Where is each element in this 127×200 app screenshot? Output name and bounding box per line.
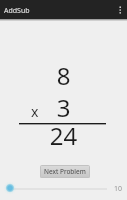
staticText: 10 — [114, 184, 123, 194]
staticText: Next Problem — [44, 167, 86, 176]
staticText: x — [31, 102, 39, 121]
staticText: AddSub — [4, 6, 30, 16]
button[interactable]: More options — [113, 1, 127, 19]
staticText: 24 — [0, 119, 127, 152]
staticText: 3 — [0, 91, 127, 124]
staticText: 8 — [0, 59, 127, 92]
button[interactable]: Next Problem — [40, 165, 90, 178]
button[interactable]: Difficulty slider — [2, 180, 18, 196]
